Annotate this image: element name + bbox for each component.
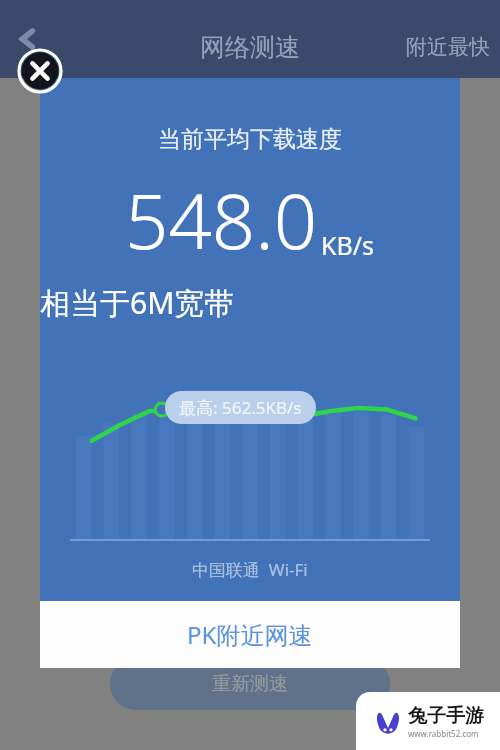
button[interactable]: PK附近网速	[40, 601, 460, 668]
staticText: PK附近网速	[187, 618, 313, 651]
staticText: 中国联通 Wi-Fi	[192, 558, 308, 581]
button[interactable]: 重新测速	[110, 658, 390, 710]
staticText: 相当于6M宽带	[40, 282, 460, 323]
button[interactable]: Back	[6, 17, 50, 61]
staticText: 网络测速	[200, 32, 300, 63]
staticText: KB/s	[321, 228, 375, 262]
staticText: 附近最快	[406, 34, 490, 60]
staticText: 548.0	[125, 168, 318, 272]
staticText: 最高: 562.5KB/s	[179, 396, 302, 419]
staticText: 兔子手游	[408, 704, 484, 728]
button[interactable]: Close	[19, 50, 61, 92]
staticText: www.rabbit52.com	[408, 728, 479, 739]
staticText: 重新测速	[212, 672, 288, 696]
button[interactable]: 附近最快	[406, 34, 490, 60]
staticText: 当前平均下载速度	[158, 125, 342, 154]
